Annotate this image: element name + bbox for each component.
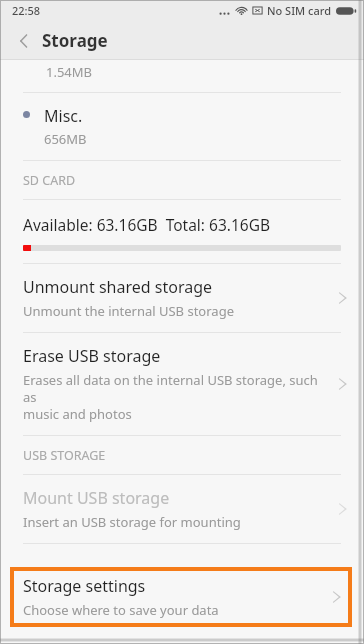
staticText: Storage [42,29,108,52]
staticText: Available: 63.16GB Total: 63.16GB [23,214,271,235]
staticText: Erase USB storage [23,345,161,367]
staticText: 22:58 [12,3,41,18]
button[interactable]: Back [8,25,40,57]
staticText: SD CARD [23,172,76,189]
button[interactable]: Erase USB storage [0,333,364,435]
staticText: Storage settings [23,575,146,597]
button[interactable]: Storage settings [10,567,352,627]
staticText: Insert an USB storage for mounting [23,513,241,531]
button[interactable]: Unmount shared storage [0,264,364,332]
button[interactable]: Mount USB storage [0,475,364,543]
staticText: No SIM card [267,3,331,18]
staticText: 1.54MB [46,63,93,81]
staticText: Erases all data on the internal USB stor… [23,371,330,423]
staticText: Choose where to save your data [23,601,219,619]
staticText: 656MB [44,130,87,148]
staticText: USB STORAGE [23,447,106,464]
staticText: Unmount the internal USB storage [23,302,234,320]
staticText: Misc. [44,105,83,127]
staticText: Mount USB storage [23,487,170,509]
staticText: Unmount shared storage [23,276,213,298]
button[interactable]: Misc. [0,93,364,160]
